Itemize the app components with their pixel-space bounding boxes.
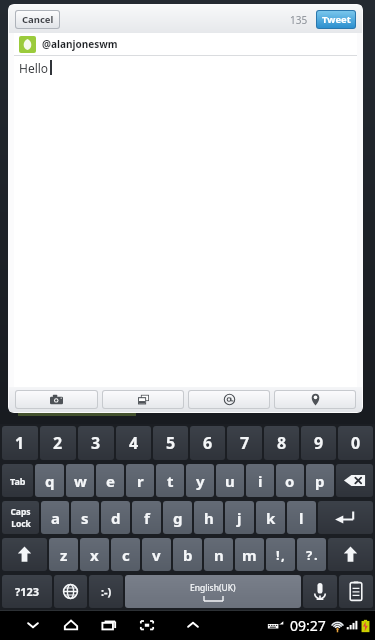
button[interactable]: w [66,464,94,497]
button[interactable]: m [235,538,264,571]
staticText: q [45,471,55,491]
button[interactable]: h [194,501,223,534]
staticText: . [314,546,318,564]
staticText: 3 [91,432,101,454]
button[interactable]: Recent apps [90,611,128,639]
staticText: h [204,508,214,528]
button[interactable]: Camera [16,391,97,408]
staticText: :-) [101,584,112,599]
staticText: Tweet [322,13,351,26]
button[interactable]: n [204,538,233,571]
button[interactable]: p [306,464,334,497]
staticText: 6 [203,432,213,454]
button[interactable]: Shift [2,538,47,571]
button[interactable]: e [96,464,124,497]
button[interactable]: 0 [338,426,373,460]
button[interactable]: Tab [2,464,33,497]
button[interactable]: g [163,501,192,534]
button[interactable]: 9 [301,426,336,460]
button[interactable]: 4 [116,426,151,460]
button[interactable]: 7 [227,426,262,460]
button[interactable]: Home [52,611,90,639]
button[interactable]: 3 [78,426,114,460]
button[interactable]: u [216,464,244,497]
button[interactable]: ! [266,538,295,571]
staticText: ? [306,546,313,564]
staticText: s [81,508,89,528]
button[interactable]: Location [275,391,355,408]
button[interactable]: c [111,538,140,571]
button[interactable]: Tweet [317,11,355,28]
staticText: d [111,508,121,528]
button[interactable]: 1 [2,426,38,460]
button[interactable]: k [256,501,285,534]
staticText: x [90,545,99,565]
button[interactable]: v [142,538,171,571]
button[interactable]: Enter [318,501,373,534]
button[interactable]: 6 [190,426,225,460]
button[interactable]: Hello [14,56,357,387]
staticText: , [281,546,285,564]
button[interactable]: Voice input [303,575,337,608]
button[interactable]: z [49,538,78,571]
button[interactable]: x [80,538,109,571]
staticText: z [60,545,68,565]
button[interactable]: s [71,501,99,534]
staticText: u [225,471,235,491]
button[interactable]: Back [14,611,52,639]
button[interactable]: d [101,501,130,534]
staticText: r [137,471,144,491]
button[interactable]: Backspace [336,464,373,497]
button[interactable]: Gallery [103,391,183,408]
staticText: i [258,471,263,491]
staticText: Lock [11,518,31,530]
button[interactable]: ? [297,538,326,571]
staticText: l [299,508,304,528]
button[interactable]: :-) [89,575,123,608]
button[interactable]: Space [125,575,301,608]
button[interactable]: Cancel [16,11,59,28]
staticText: 5 [166,432,176,454]
button[interactable]: Screenshot [128,611,166,639]
button[interactable]: a [41,501,69,534]
button[interactable]: Clipboard [339,575,373,608]
button[interactable]: i [246,464,274,497]
button[interactable]: 5 [153,426,188,460]
button[interactable]: Hide keyboard [176,611,210,639]
staticText: n [214,545,224,565]
button[interactable]: @alanjoneswm [14,33,357,55]
button[interactable]: o [276,464,304,497]
staticText: j [237,508,242,528]
button[interactable]: r [126,464,154,497]
button[interactable]: Caps [2,501,39,534]
staticText: Hello [19,60,49,76]
button[interactable]: 2 [40,426,76,460]
staticText: 2 [53,432,63,454]
button[interactable]: t [156,464,184,497]
staticText: 0 [351,432,361,454]
staticText: ?123 [15,584,40,599]
staticText: w [74,471,87,491]
staticText: k [266,508,276,528]
button[interactable]: y [186,464,214,497]
button[interactable]: Shift [328,538,373,571]
staticText: English(UK) [190,582,236,594]
staticText: Caps [10,506,31,518]
button[interactable]: b [173,538,202,571]
button[interactable]: j [225,501,254,534]
button[interactable]: q [35,464,64,497]
staticText: e [106,471,115,491]
button[interactable]: l [287,501,316,534]
button[interactable]: Mention [189,391,269,408]
staticText: 135 [290,13,308,27]
button[interactable]: f [132,501,161,534]
staticText: c [122,545,130,565]
staticText: Cancel [22,13,54,26]
button[interactable]: ?123 [2,575,52,608]
staticText: p [315,471,325,491]
staticText: 09:27 [290,616,326,635]
button[interactable]: Change language [54,575,87,608]
button[interactable]: 8 [264,426,299,460]
staticText: 1 [15,432,25,454]
staticText: b [183,545,193,565]
